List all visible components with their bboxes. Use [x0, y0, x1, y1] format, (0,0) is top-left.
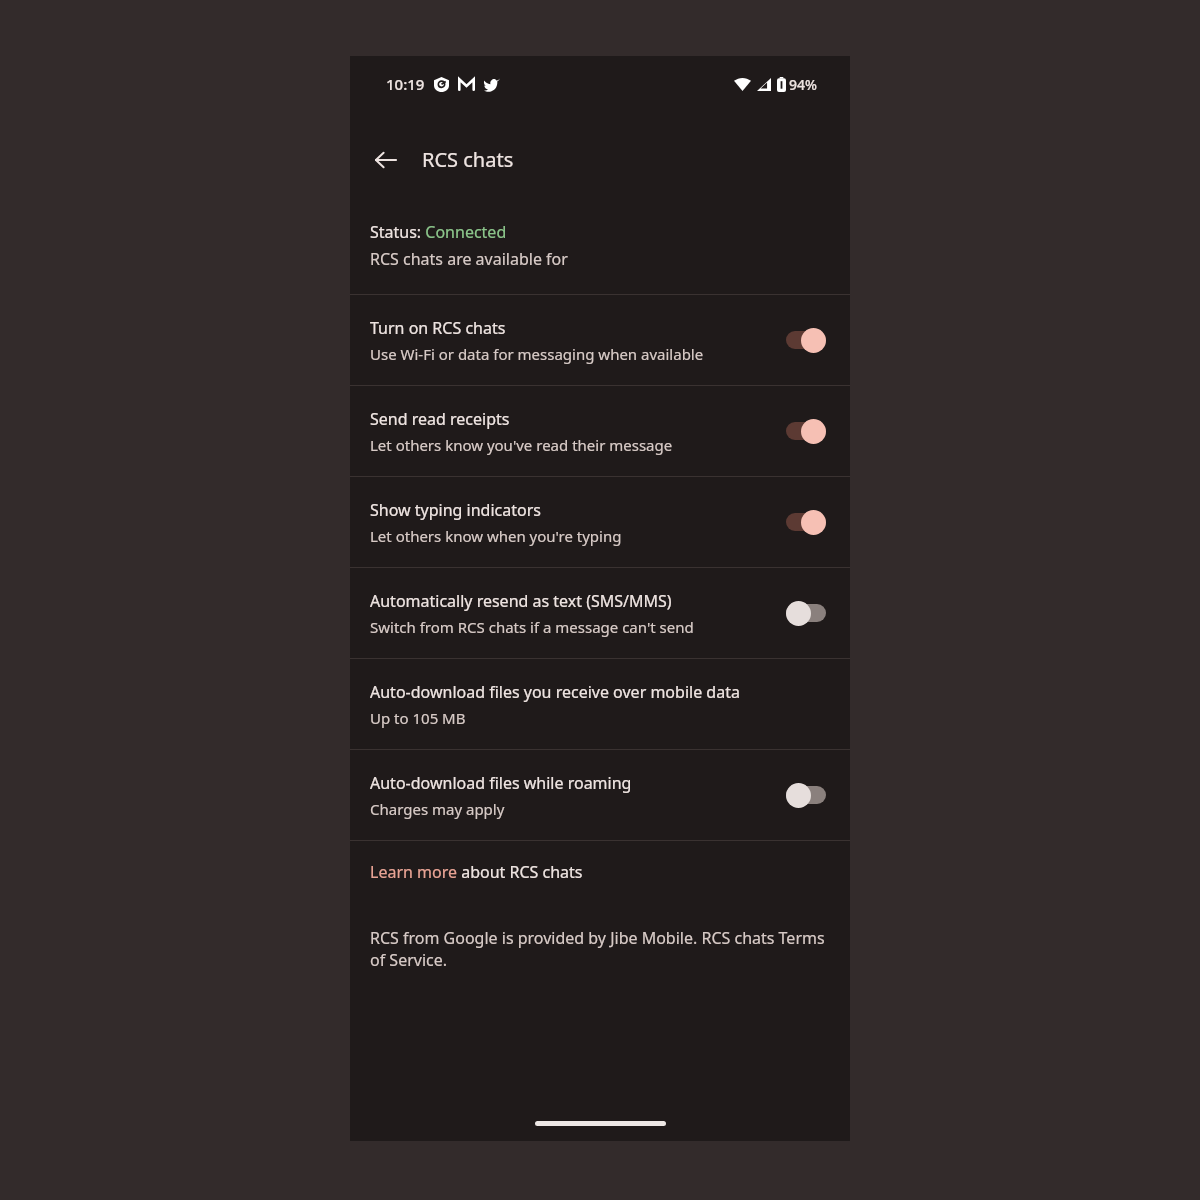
button[interactable]: Send read receipts — [350, 386, 850, 476]
button[interactable]: Learn more about RCS chats — [370, 861, 583, 883]
staticText: 10:19 — [386, 74, 425, 94]
button[interactable]: On — [782, 505, 830, 539]
staticText: RCS chats — [422, 146, 514, 173]
staticText: RCS chats are available for — [370, 248, 568, 270]
button[interactable]: Status: Connected — [350, 207, 850, 294]
staticText: Auto-download files you receive over mob… — [370, 681, 740, 703]
button[interactable]: Auto-download files while roaming — [350, 750, 850, 840]
staticText: Learn more about RCS chats — [370, 861, 583, 883]
staticText: Let others know you've read their messag… — [370, 435, 673, 455]
button[interactable]: Turn on RCS chats — [350, 295, 850, 385]
staticText: RCS from Google is provided by Jibe Mobi… — [370, 927, 830, 971]
staticText: Send read receipts — [370, 408, 510, 430]
button[interactable]: Off — [782, 778, 830, 812]
staticText: Use Wi-Fi or data for messaging when ava… — [370, 344, 704, 364]
staticText: 94% — [789, 75, 817, 94]
button[interactable]: Show typing indicators — [350, 477, 850, 567]
staticText: Status: Connected — [370, 221, 507, 243]
staticText: Turn on RCS chats — [370, 317, 506, 339]
staticText: Switch from RCS chats if a message can't… — [370, 617, 694, 637]
staticText: Let others know when you're typing — [370, 526, 622, 546]
button[interactable]: Back — [362, 136, 410, 184]
staticText: Automatically resend as text (SMS/MMS) — [370, 590, 672, 612]
button[interactable]: Auto-download files you receive over mob… — [350, 659, 850, 749]
staticText: Auto-download files while roaming — [370, 772, 632, 794]
staticText: Show typing indicators — [370, 499, 541, 521]
button[interactable]: Off — [782, 596, 830, 630]
staticText: Up to 105 MB — [370, 708, 466, 728]
staticText: Charges may apply — [370, 799, 505, 819]
button[interactable]: On — [782, 323, 830, 357]
button[interactable]: On — [782, 414, 830, 448]
button[interactable]: Automatically resend as text (SMS/MMS) — [350, 568, 850, 658]
